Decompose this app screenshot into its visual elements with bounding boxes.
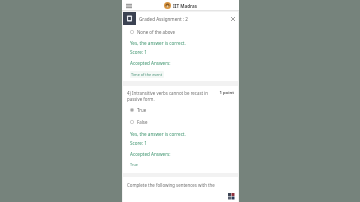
staticText: None of the above xyxy=(137,29,175,35)
staticText: Score: 1 xyxy=(130,49,147,55)
staticText: False xyxy=(137,119,148,125)
staticText: Yes, the answer is correct. xyxy=(130,131,186,137)
button[interactable]: None of the above xyxy=(123,28,238,36)
staticText: Score: 1 xyxy=(130,140,147,146)
staticText: True xyxy=(130,162,138,167)
staticText: Accepted Answers: xyxy=(130,60,171,66)
staticText: Time of the event xyxy=(131,72,163,77)
staticText: Yes, the answer is correct. xyxy=(130,40,186,46)
button[interactable]: False xyxy=(123,118,238,126)
staticText: Complete the following sentences with th… xyxy=(127,182,215,188)
staticText: Accepted Answers: xyxy=(130,151,171,157)
button[interactable]: True xyxy=(123,106,238,114)
button[interactable]: Close xyxy=(227,13,238,24)
staticText: True xyxy=(137,107,147,113)
staticText: 4) Intransitive verbs cannot be recast i… xyxy=(127,90,217,102)
button[interactable]: Open navigation menu xyxy=(124,1,133,10)
staticText: IIT Madras xyxy=(173,3,197,9)
button[interactable]: Keypad xyxy=(226,191,237,202)
staticText: Graded Assignment : 2 xyxy=(139,16,227,22)
staticText: 1 point xyxy=(219,90,234,96)
